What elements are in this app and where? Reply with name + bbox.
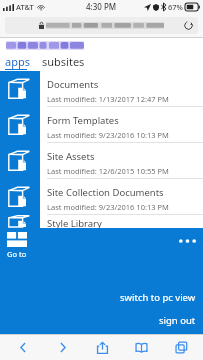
staticText: Last modified: 12/6/2015 10:55 PM [47,166,169,176]
staticText: 67% [168,2,183,12]
button[interactable]: Share [85,335,119,360]
staticText: Last modified: 1/13/2017 12:47 PM [47,94,169,104]
button[interactable]: Style Library [0,215,203,228]
button[interactable]: Bookmarks [124,335,158,360]
staticText: sign out [159,314,196,327]
staticText: apps [5,54,30,69]
staticText: Form Templates [47,114,119,127]
button[interactable]: Tabs [164,335,198,360]
button[interactable]: Forward [45,335,79,360]
button[interactable]: Reload [5,17,198,34]
button[interactable]: apps [5,54,30,69]
button[interactable]: subsites [42,54,85,69]
button[interactable]: sign out [159,314,196,327]
button[interactable]: More options [177,235,197,247]
staticText: 4:30 PM [86,1,117,12]
button[interactable]: Site Assets [0,143,203,179]
staticText: switch to pc view [120,291,196,304]
button[interactable]: Site Collection Documents [0,179,203,215]
staticText: AT&T [16,2,34,12]
staticText: subsites [42,54,85,69]
staticText: Go to [7,249,27,259]
staticText: Site Collection Documents [47,186,164,199]
staticText: Site Assets [47,150,95,163]
staticText: Documents [47,78,99,91]
staticText: Last modified: 9/23/2016 10:13 PM [47,202,169,212]
button[interactable]: Reload [182,19,195,32]
button[interactable]: Form Templates [0,107,203,143]
button[interactable]: switch to pc view [120,291,196,304]
button[interactable]: Back [6,335,40,360]
button[interactable]: Documents [0,71,203,107]
staticText: Last modified: 9/23/2016 10:13 PM [47,130,169,140]
button[interactable]: Go to [7,232,27,259]
staticText: Style Library [47,217,102,228]
